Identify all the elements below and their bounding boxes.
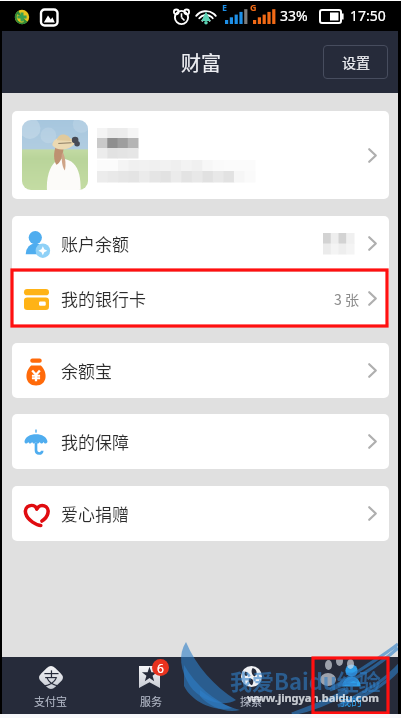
button[interactable]: 设置 bbox=[323, 45, 388, 79]
staticText: 我爱Baidu经验 bbox=[230, 664, 381, 696]
staticText: 财富 bbox=[181, 48, 221, 77]
button[interactable]: 爱心捐赠 bbox=[12, 486, 389, 541]
staticText: E bbox=[222, 1, 228, 13]
staticText: 6 bbox=[157, 660, 164, 676]
staticText: 账户余额 bbox=[61, 231, 129, 256]
button[interactable]: 我的 bbox=[301, 657, 401, 714]
button[interactable]: 支 bbox=[0, 657, 101, 714]
staticText: 3 张 bbox=[334, 289, 359, 309]
button[interactable]: 6 bbox=[101, 657, 201, 714]
staticText: 我的 bbox=[340, 693, 362, 709]
staticText: 探索 bbox=[240, 693, 262, 709]
staticText: 设置 bbox=[342, 52, 370, 72]
staticText: 33% bbox=[280, 6, 308, 25]
staticText: 支付宝 bbox=[34, 693, 67, 709]
staticText: 服务 bbox=[140, 693, 162, 709]
button[interactable] bbox=[12, 111, 389, 199]
button[interactable]: 账户余额 bbox=[12, 216, 389, 271]
button[interactable]: 我的银行卡 bbox=[12, 271, 389, 326]
button[interactable]: 我的保障 bbox=[12, 414, 389, 469]
staticText: 我的银行卡 bbox=[61, 286, 146, 311]
staticText: 17:50 bbox=[350, 6, 386, 25]
staticText: 爱心捐赠 bbox=[61, 501, 129, 526]
button[interactable]: 余额宝 bbox=[12, 343, 389, 398]
staticText: www.jingyan.baidu.com bbox=[247, 690, 379, 705]
staticText: G bbox=[250, 1, 257, 13]
button[interactable]: 探索 bbox=[201, 657, 301, 714]
staticText: 余额宝 bbox=[61, 358, 112, 383]
staticText: 支 bbox=[43, 665, 60, 690]
staticText: 我的保障 bbox=[61, 429, 129, 454]
